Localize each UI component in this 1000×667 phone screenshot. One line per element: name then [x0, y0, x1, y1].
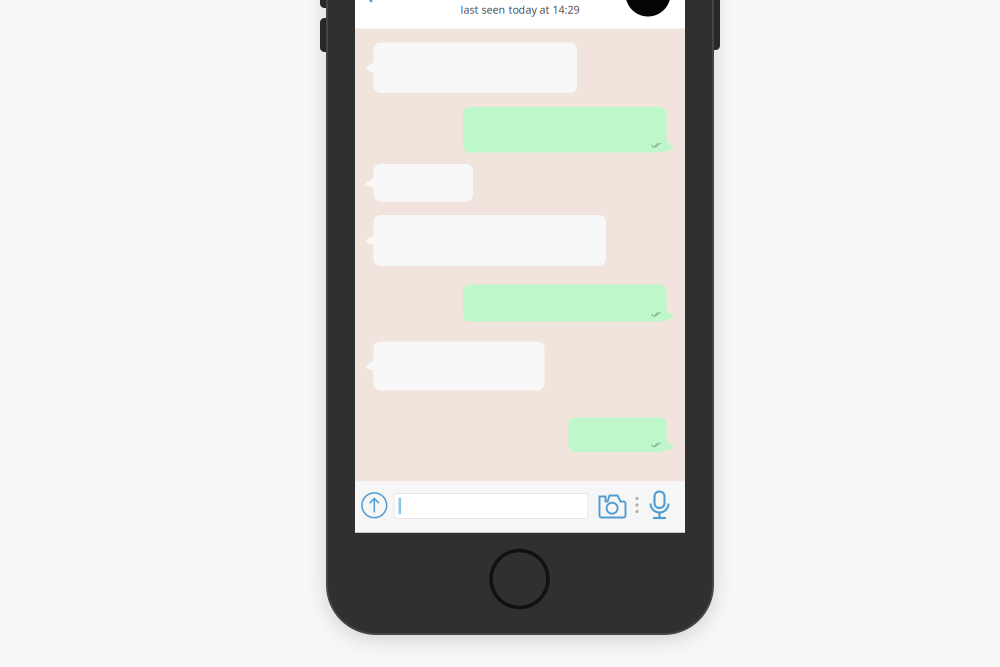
button[interactable]: Voice message — [0, 0, 1000, 667]
button[interactable]: Attach — [0, 0, 1000, 667]
button[interactable]: Sent message — [463, 284, 666, 321]
button[interactable]: Received message — [373, 164, 473, 201]
button[interactable]: Contact profile — [620, 0, 676, 18]
button[interactable]: Back — [0, 0, 1000, 667]
button[interactable]: Sent message — [463, 107, 666, 152]
button[interactable]: Sent message — [568, 417, 666, 452]
button[interactable]: Camera — [0, 0, 1000, 667]
button[interactable]: Home — [0, 0, 1000, 667]
staticText: last seen today at 14:29 — [460, 2, 579, 17]
button[interactable]: More options — [0, 0, 1000, 667]
